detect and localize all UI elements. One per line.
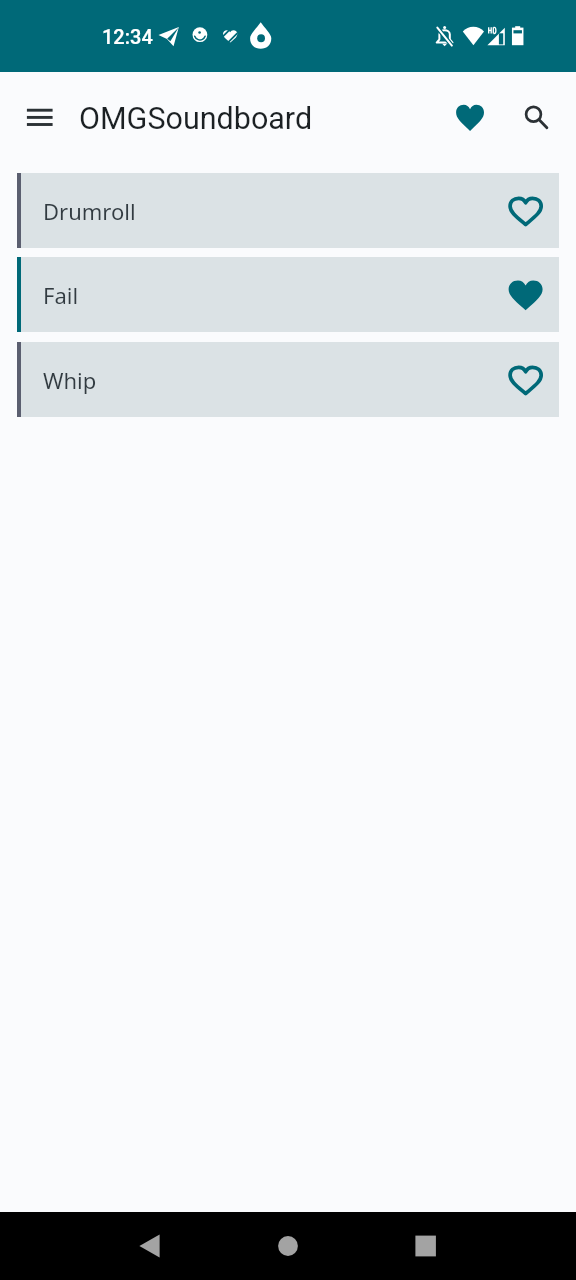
button[interactable]: Whip bbox=[17, 342, 559, 417]
staticText: Drumroll bbox=[43, 196, 496, 226]
button[interactable]: Drumroll bbox=[17, 173, 559, 248]
button[interactable]: Show favorites bbox=[444, 92, 495, 143]
button[interactable]: Search bbox=[509, 92, 560, 143]
staticText: OMGSoundboard bbox=[79, 101, 313, 137]
button[interactable]: Remove Fail from favorites bbox=[496, 265, 556, 325]
button[interactable]: Add Whip to favorites bbox=[496, 350, 556, 410]
staticText: Fail bbox=[43, 280, 496, 310]
button[interactable]: Add Drumroll to favorites bbox=[496, 181, 556, 241]
staticText: Whip bbox=[43, 365, 496, 395]
button[interactable]: Fail bbox=[17, 257, 559, 332]
staticText: 12:34 bbox=[102, 25, 153, 48]
button[interactable]: Open navigation menu bbox=[15, 92, 65, 142]
